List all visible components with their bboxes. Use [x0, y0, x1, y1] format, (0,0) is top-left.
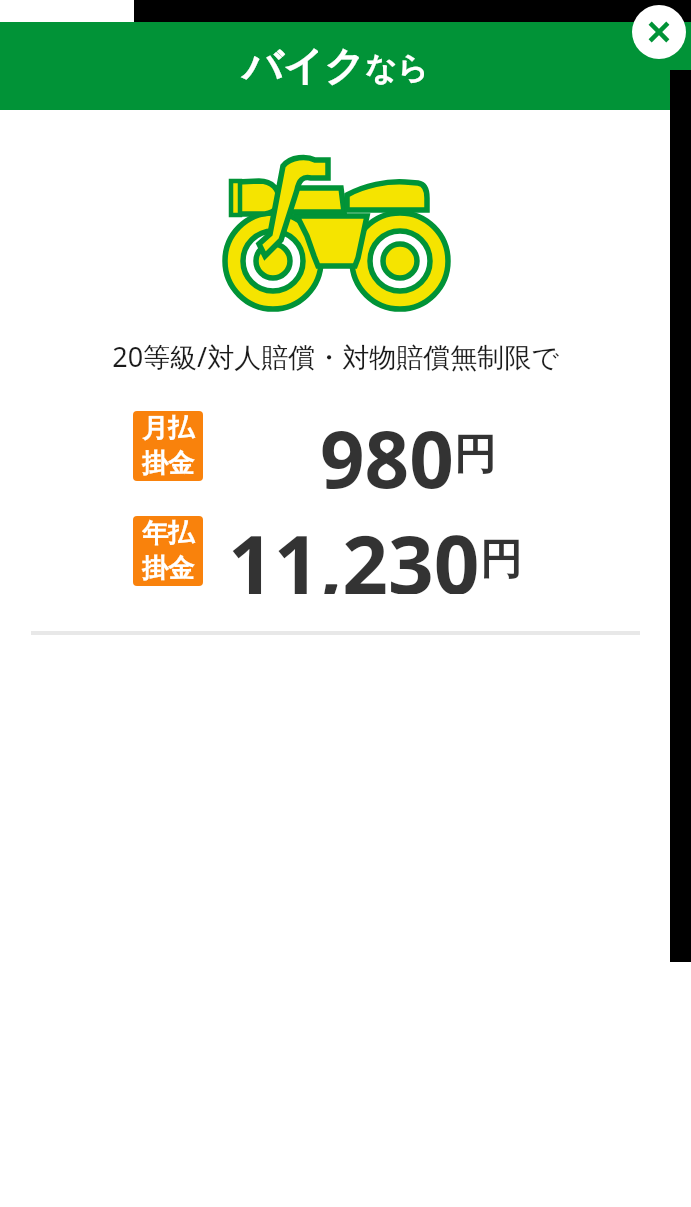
staticText: 掛金 [142, 447, 194, 480]
button[interactable]: 月払 [133, 411, 203, 481]
staticText: 年払 [142, 517, 194, 550]
staticText: 円 [480, 534, 522, 587]
staticText: 20等級/対人賠償・対物賠償無制限で [112, 338, 559, 375]
button[interactable]: 閉じる [632, 5, 686, 59]
button[interactable]: 年払 [133, 516, 203, 586]
staticText: 980 [320, 405, 454, 489]
staticText: 円 [454, 429, 496, 482]
staticText: 11,230 [228, 508, 480, 594]
staticText: バイク [242, 41, 365, 91]
staticText: 掛金 [142, 552, 194, 585]
staticText: 月払 [142, 412, 194, 445]
staticText: なら [365, 49, 429, 88]
